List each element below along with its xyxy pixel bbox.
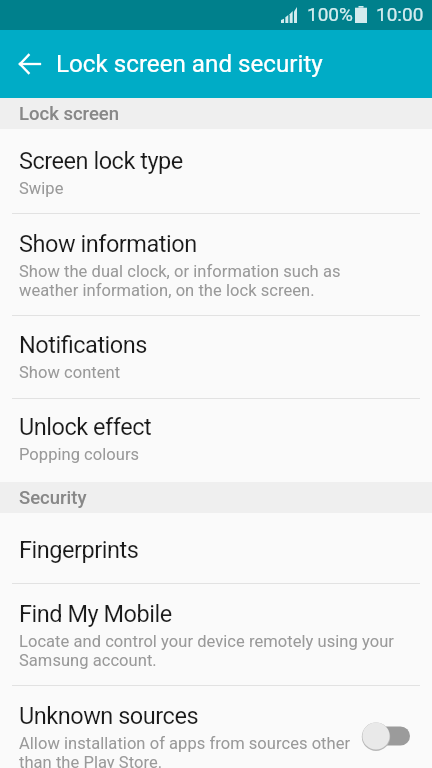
button[interactable]: Fingerprints — [0, 513, 432, 583]
button[interactable]: Unknown sources — [0, 686, 432, 768]
staticText: Show the dual clock, or information such… — [19, 262, 341, 300]
staticText: Unlock effect — [19, 413, 152, 441]
staticText: Fingerprints — [19, 536, 139, 564]
button[interactable]: Unlock effect — [0, 399, 432, 482]
button[interactable]: Navigate up — [8, 43, 50, 85]
button[interactable]: Screen lock type — [0, 129, 432, 213]
staticText: Allow installation of apps from sources … — [19, 734, 351, 768]
staticText: Find My Mobile — [19, 600, 172, 628]
staticText: Notifications — [19, 331, 147, 359]
staticText: Screen lock type — [19, 147, 183, 175]
button[interactable]: Notifications — [0, 316, 432, 398]
staticText: Popping colours — [19, 445, 140, 464]
staticText: 10:00 — [376, 3, 424, 25]
staticText: Lock screen — [19, 103, 120, 125]
staticText: Show content — [19, 363, 121, 382]
staticText: 100% — [307, 3, 353, 25]
staticText: Swipe — [19, 179, 64, 198]
staticText: Unknown sources — [19, 702, 199, 730]
staticText: Lock screen and security — [56, 50, 323, 78]
staticText: Show information — [19, 230, 197, 258]
staticText: Locate and control your device remotely … — [19, 632, 394, 670]
button[interactable]: Find My Mobile — [0, 584, 432, 685]
button[interactable]: Unknown sources, off — [362, 721, 410, 751]
button[interactable]: Show information — [0, 214, 432, 315]
staticText: Security — [19, 487, 87, 509]
